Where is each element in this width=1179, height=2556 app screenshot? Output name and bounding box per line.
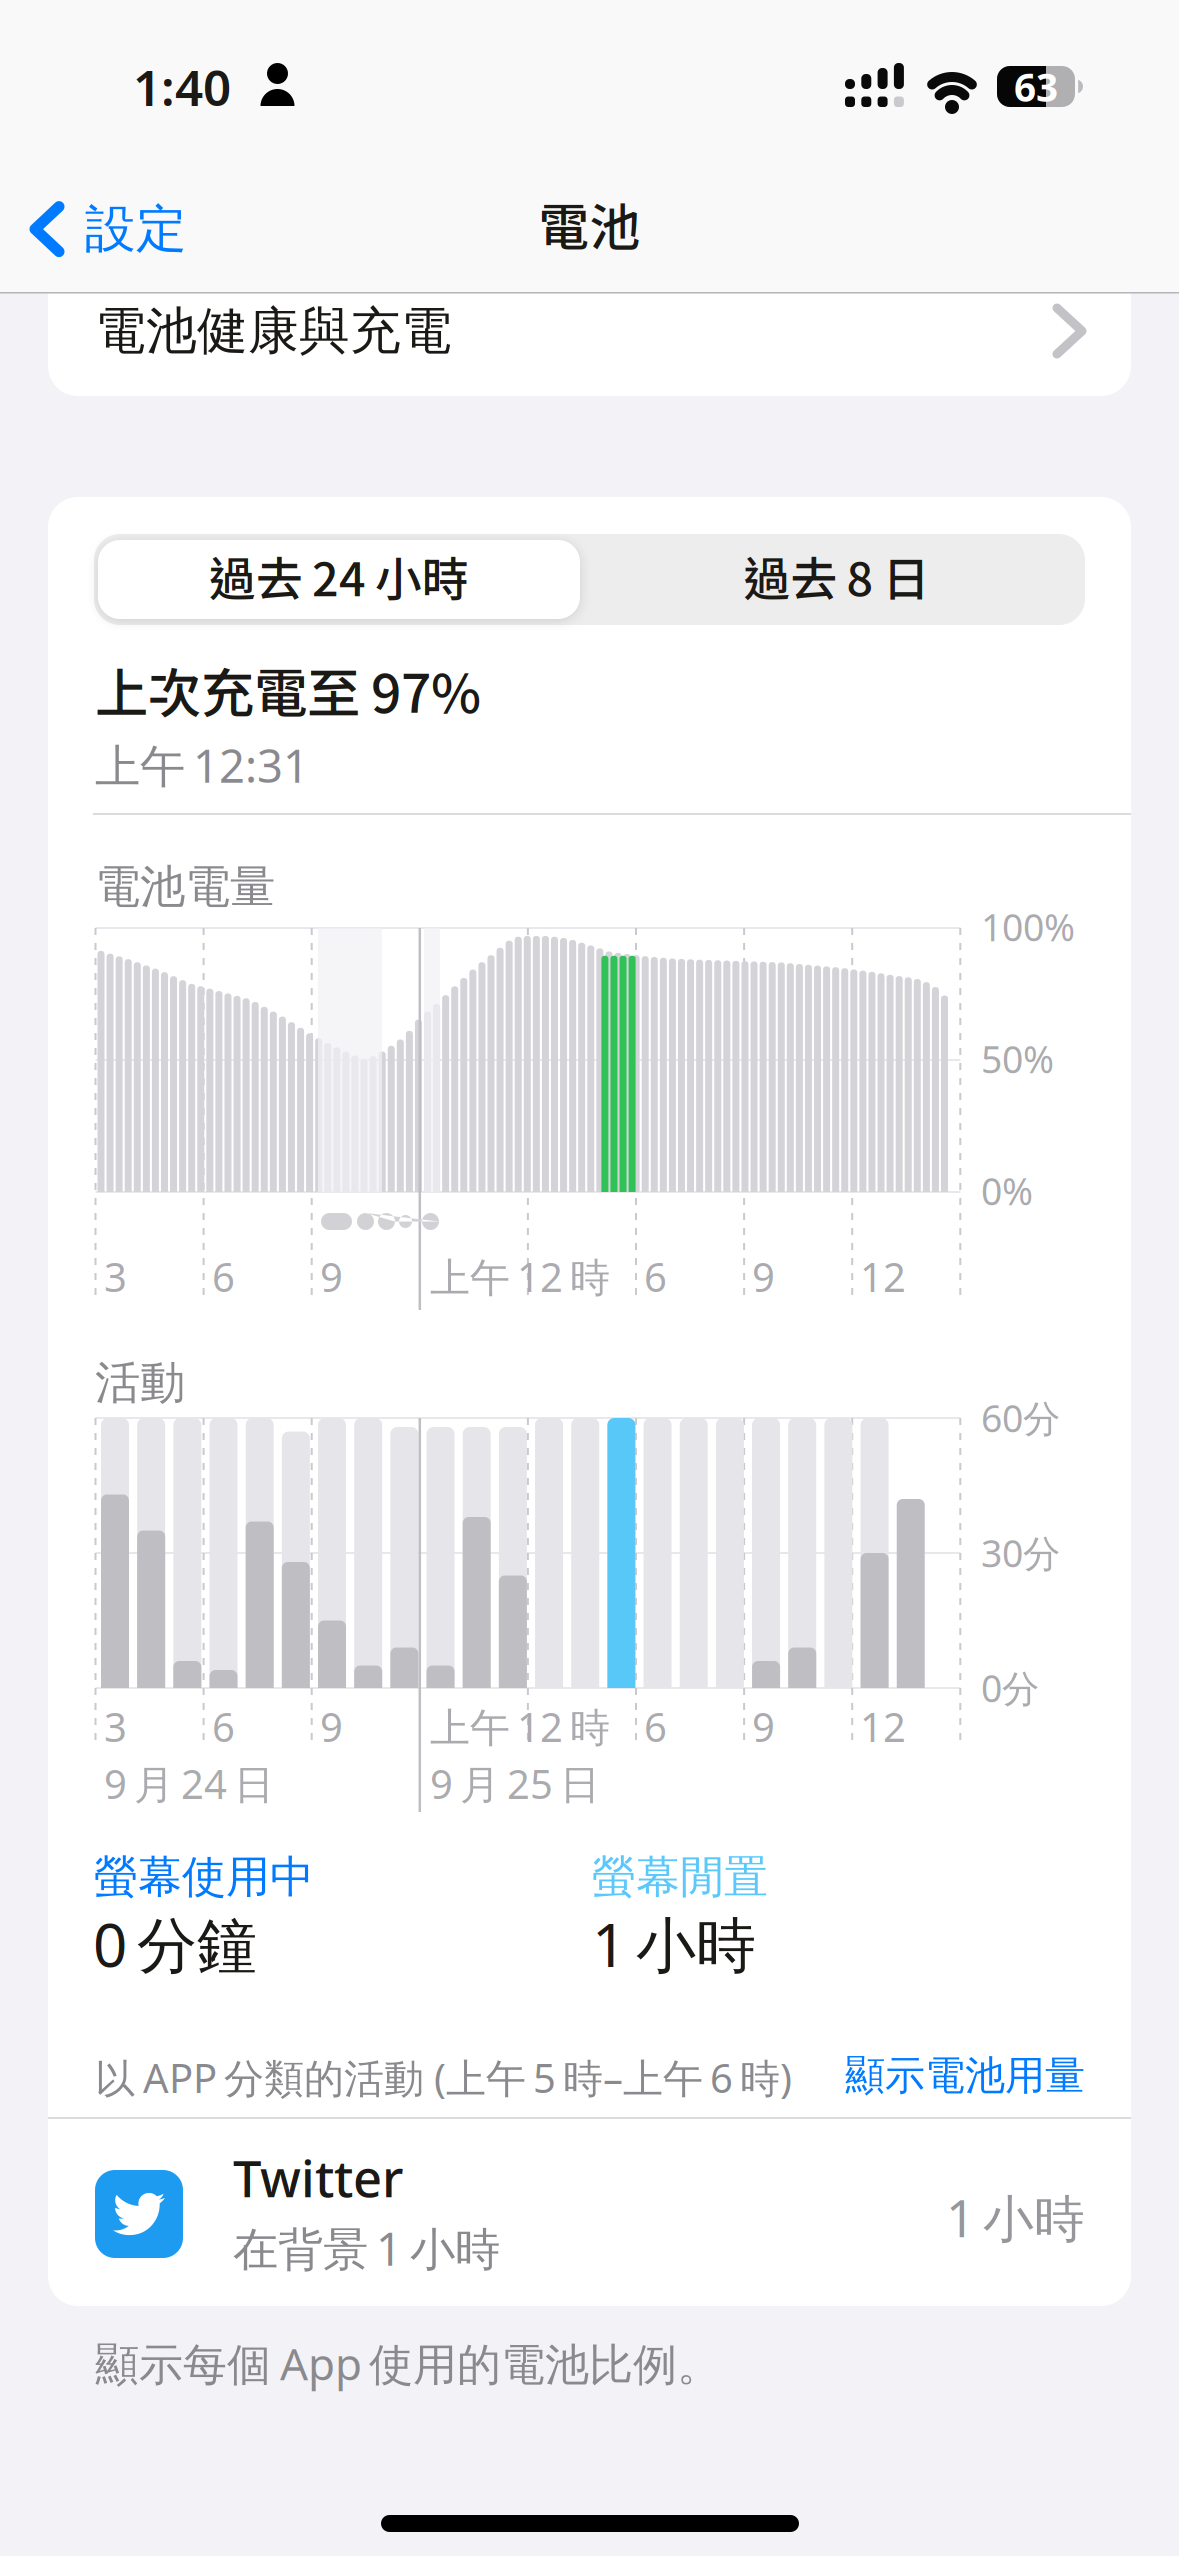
staticText: 螢幕使用中 (94, 1850, 314, 1904)
staticText: 6 (644, 1700, 667, 1753)
staticText: 上次充電至 97% (95, 651, 481, 728)
staticText: 30分 (981, 1528, 1060, 1578)
staticText: 12 (860, 1250, 906, 1303)
staticText: 電池電量 (95, 859, 275, 915)
staticText: 3 (104, 1250, 127, 1303)
staticText: 63 (1014, 61, 1058, 112)
staticText: 1 小時 (946, 2184, 1085, 2251)
staticText: Twitter (233, 2144, 403, 2211)
staticText: 在背景 1 小時 (233, 2218, 500, 2278)
staticText: 6 (212, 1700, 235, 1753)
button[interactable]: 過去 8 日 (588, 534, 1085, 625)
staticText: 過去 24 小時 (209, 542, 469, 610)
staticText: 9 (320, 1250, 343, 1303)
staticText: 50% (981, 1034, 1054, 1084)
staticText: 設定 (85, 198, 187, 260)
staticText: 0% (981, 1166, 1033, 1216)
staticText: 電池健康與充電 (95, 300, 452, 362)
staticText: 1:40 (133, 54, 231, 119)
staticText: 12 (860, 1700, 906, 1753)
button[interactable]: Twitter (48, 2119, 1131, 2306)
staticText: 9 月 24 日 (104, 1757, 274, 1810)
staticText: 顯示每個 App 使用的電池比例。 (95, 2334, 721, 2392)
button[interactable]: 過去 24 小時 (98, 540, 580, 619)
button[interactable]: 設定 (32, 198, 187, 260)
staticText: 上午 12 時 (430, 1250, 610, 1303)
staticText: 顯示電池用量 (845, 2051, 1085, 2100)
staticText: 電池 (538, 187, 640, 260)
staticText: 1 小時 (592, 1904, 756, 1984)
staticText: 以 APP 分類的活動 (上午 5 時–上午 6 時) (95, 2051, 792, 2104)
button[interactable]: 顯示電池用量 (845, 2051, 1085, 2100)
staticText: 6 (212, 1250, 235, 1303)
staticText: 9 (752, 1250, 775, 1303)
staticText: 9 月 25 日 (430, 1757, 600, 1810)
staticText: 0分 (981, 1663, 1039, 1713)
staticText: 6 (644, 1250, 667, 1303)
staticText: 上午 12 時 (430, 1700, 610, 1753)
staticText: 活動 (95, 1355, 185, 1411)
staticText: 螢幕閒置 (592, 1850, 768, 1904)
staticText: 0 分鐘 (93, 1904, 257, 1984)
staticText: 3 (104, 1700, 127, 1753)
staticText: 過去 8 日 (743, 542, 929, 610)
staticText: 上午 12:31 (95, 735, 309, 795)
staticText: 9 (752, 1700, 775, 1753)
staticText: 9 (320, 1700, 343, 1753)
button[interactable]: 電池健康與充電 (48, 292, 1131, 396)
staticText: 60分 (981, 1393, 1060, 1443)
staticText: 100% (981, 902, 1075, 952)
